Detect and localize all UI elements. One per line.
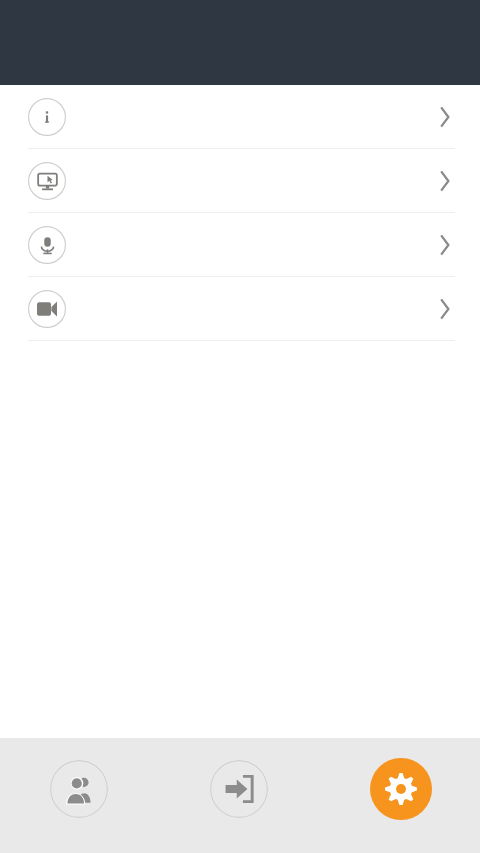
button[interactable]: Remote desktop bbox=[0, 149, 480, 213]
button[interactable]: Information bbox=[0, 85, 480, 149]
button[interactable]: Sign in bbox=[210, 760, 268, 818]
button[interactable]: Microphone bbox=[0, 213, 480, 277]
button[interactable]: Users bbox=[50, 760, 108, 818]
button[interactable]: Settings bbox=[370, 758, 432, 820]
button[interactable]: Camera bbox=[0, 277, 480, 341]
